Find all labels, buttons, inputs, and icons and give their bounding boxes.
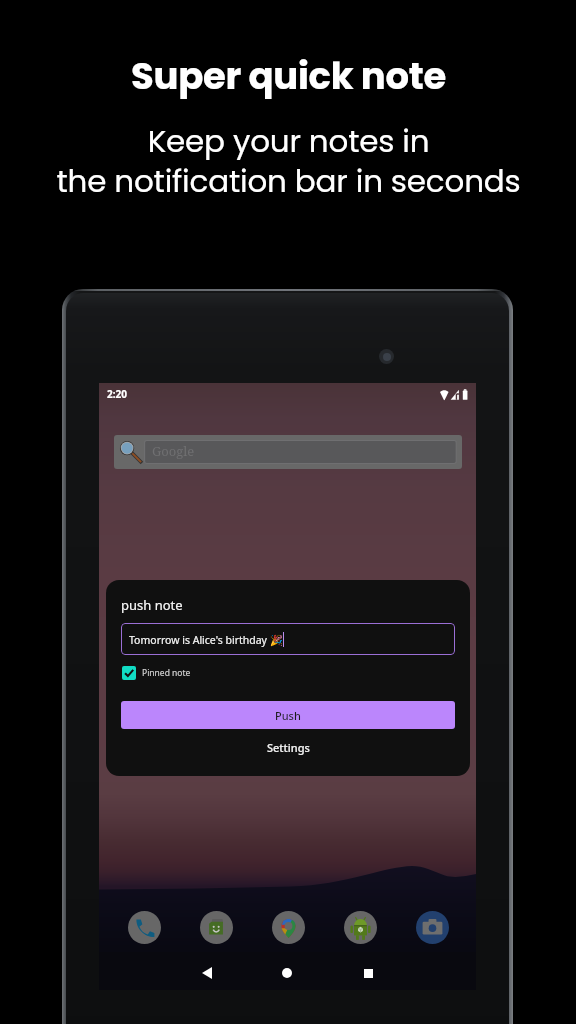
staticText: Super quick note: [131, 50, 446, 102]
button[interactable]: Recents: [348, 954, 388, 992]
button[interactable]: Android: [344, 911, 377, 944]
button[interactable]: Play Store: [200, 911, 233, 944]
staticText: Keep your notes in the notification bar …: [56, 119, 521, 203]
staticText: Settings: [267, 740, 310, 755]
staticText: push note: [121, 596, 183, 614]
button[interactable]: Back: [187, 954, 227, 992]
button[interactable]: Pinned note: [122, 665, 191, 681]
button[interactable]: Push: [121, 701, 455, 729]
staticText: 2:20: [107, 387, 127, 401]
button[interactable]: Camera: [416, 911, 449, 944]
staticText: Pinned note: [142, 667, 191, 679]
button[interactable]: Home: [267, 954, 307, 992]
button[interactable]: Maps: [272, 911, 305, 944]
staticText: Google: [152, 442, 195, 460]
button[interactable]: Tomorrow is Alice's birthday 🎉: [121, 623, 455, 655]
staticText: Tomorrow is Alice's birthday 🎉: [129, 633, 283, 647]
staticText: Push: [275, 708, 301, 723]
button[interactable]: Google search: [114, 435, 462, 469]
button[interactable]: Phone: [128, 911, 161, 944]
button[interactable]: Settings: [106, 735, 470, 759]
